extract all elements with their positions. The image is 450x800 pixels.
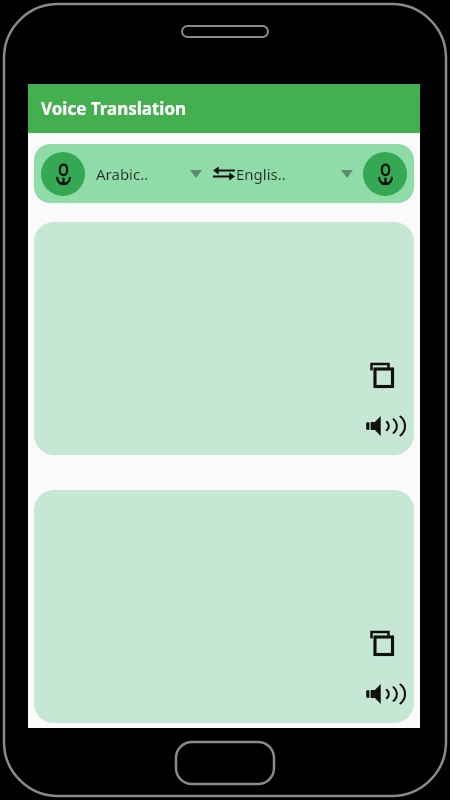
button[interactable]: Swap languages <box>212 154 236 194</box>
button[interactable]: Copy text <box>34 222 414 455</box>
button[interactable]: Record target language <box>363 152 407 196</box>
button[interactable]: Copy text <box>34 490 414 723</box>
button[interactable]: Copy text <box>362 624 400 662</box>
staticText: Voice Translation <box>41 97 187 120</box>
button[interactable]: Copy text <box>362 356 400 394</box>
button[interactable]: Englis.. <box>236 144 363 203</box>
button[interactable]: Record source language <box>41 152 85 196</box>
button[interactable]: Arabic.. <box>85 144 212 203</box>
button[interactable]: Speak text <box>362 407 400 445</box>
staticText: Englis.. <box>236 164 286 184</box>
staticText: Arabic.. <box>96 164 149 184</box>
button[interactable]: Speak text <box>362 675 400 713</box>
